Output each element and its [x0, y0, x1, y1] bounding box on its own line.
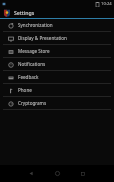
staticText: Notifications [18, 61, 114, 67]
button[interactable]: Back [18, 165, 44, 182]
staticText: Display & Presentation [18, 35, 114, 41]
button[interactable]: Notifications [0, 58, 114, 70]
button[interactable]: Message Store [0, 45, 114, 57]
staticText: Cryptograms [18, 100, 114, 106]
staticText: Synchronization [18, 22, 114, 28]
button[interactable]: Display & Presentation [0, 32, 114, 44]
staticText: Settings [14, 9, 35, 16]
staticText: Message Store [18, 48, 114, 54]
button[interactable]: Cryptograms [0, 97, 114, 109]
staticText: Phone [18, 87, 114, 93]
button[interactable]: Home [44, 165, 70, 182]
button[interactable]: Recent apps [70, 165, 96, 182]
button[interactable]: Phone [0, 84, 114, 96]
staticText: Feedback [18, 74, 114, 80]
button[interactable]: Synchronization [0, 19, 114, 31]
staticText: 10:24 [101, 1, 112, 7]
button[interactable]: Feedback [0, 71, 114, 83]
